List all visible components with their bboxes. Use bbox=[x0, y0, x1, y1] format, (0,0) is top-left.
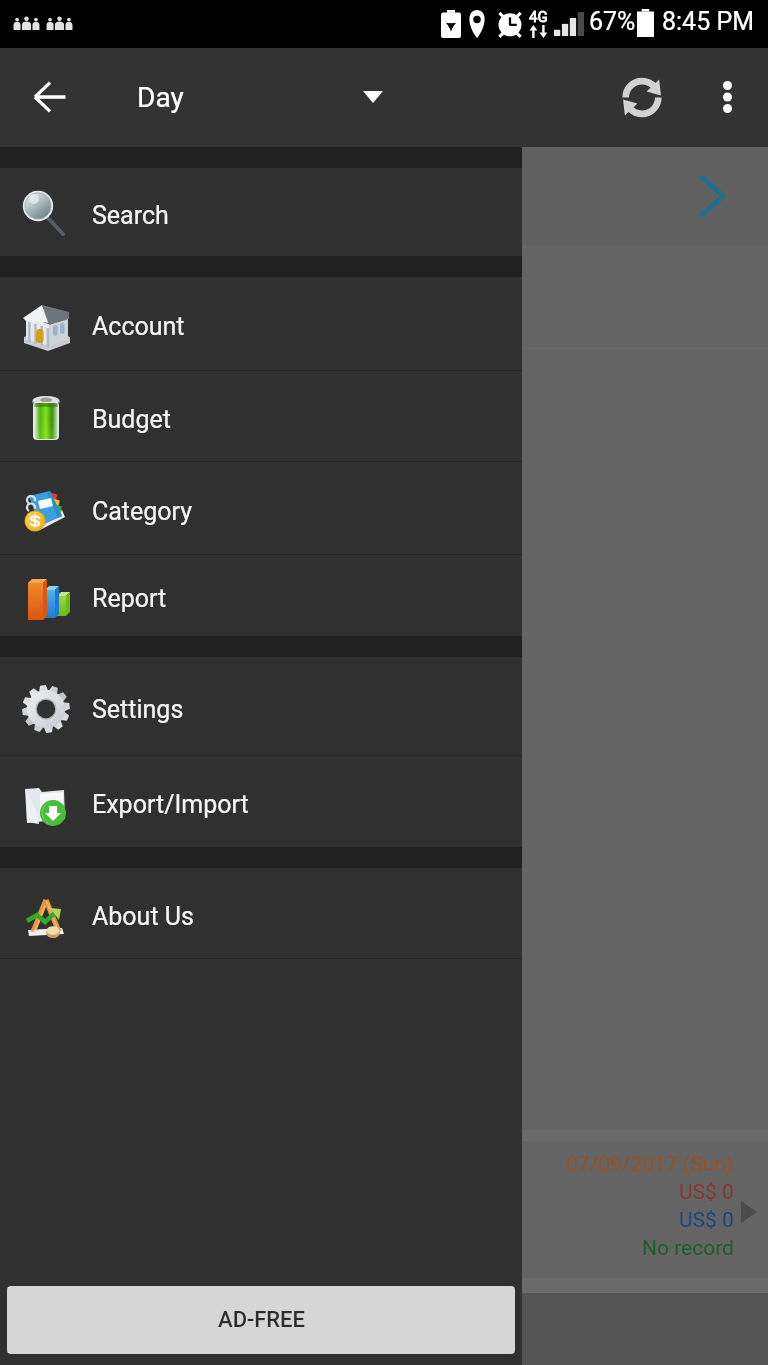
button[interactable]: Day bbox=[137, 62, 396, 132]
staticText: Report bbox=[92, 584, 167, 613]
staticText: Budget bbox=[92, 405, 171, 434]
button[interactable]: Export/Import bbox=[0, 756, 522, 847]
staticText: Settings bbox=[92, 695, 184, 724]
button[interactable]: Budget bbox=[0, 371, 522, 461]
staticText: Export/Import bbox=[92, 790, 249, 819]
staticText: Account bbox=[92, 312, 185, 341]
button[interactable]: Account bbox=[0, 277, 522, 370]
button[interactable]: Next period bbox=[0, 147, 768, 245]
button[interactable]: Search bbox=[0, 168, 522, 256]
staticText: Day bbox=[137, 81, 184, 114]
button[interactable]: About Us bbox=[0, 868, 522, 958]
button[interactable]: More options bbox=[695, 65, 759, 129]
button[interactable]: Refresh bbox=[606, 61, 678, 133]
button[interactable]: Settings bbox=[0, 657, 522, 755]
staticText: Search bbox=[92, 201, 169, 230]
staticText: 8:45 PM bbox=[662, 7, 755, 36]
staticText: 67% bbox=[589, 7, 636, 36]
staticText: AD-FREE bbox=[218, 1307, 305, 1333]
button[interactable]: Report bbox=[0, 555, 522, 636]
button[interactable]: AD-FREE bbox=[7, 1286, 515, 1354]
staticText: No record bbox=[642, 1236, 734, 1261]
staticText: 4G bbox=[529, 8, 548, 26]
staticText: 07/09/2017 (Sun) bbox=[566, 1152, 734, 1177]
staticText: Category bbox=[92, 497, 193, 526]
button[interactable]: Category bbox=[0, 462, 522, 554]
staticText: About Us bbox=[92, 902, 194, 931]
staticText: US$ 0 bbox=[679, 1180, 734, 1205]
button[interactable]: Back bbox=[14, 61, 86, 133]
staticText: US$ 0 bbox=[679, 1208, 734, 1233]
button[interactable] bbox=[0, 1141, 768, 1278]
